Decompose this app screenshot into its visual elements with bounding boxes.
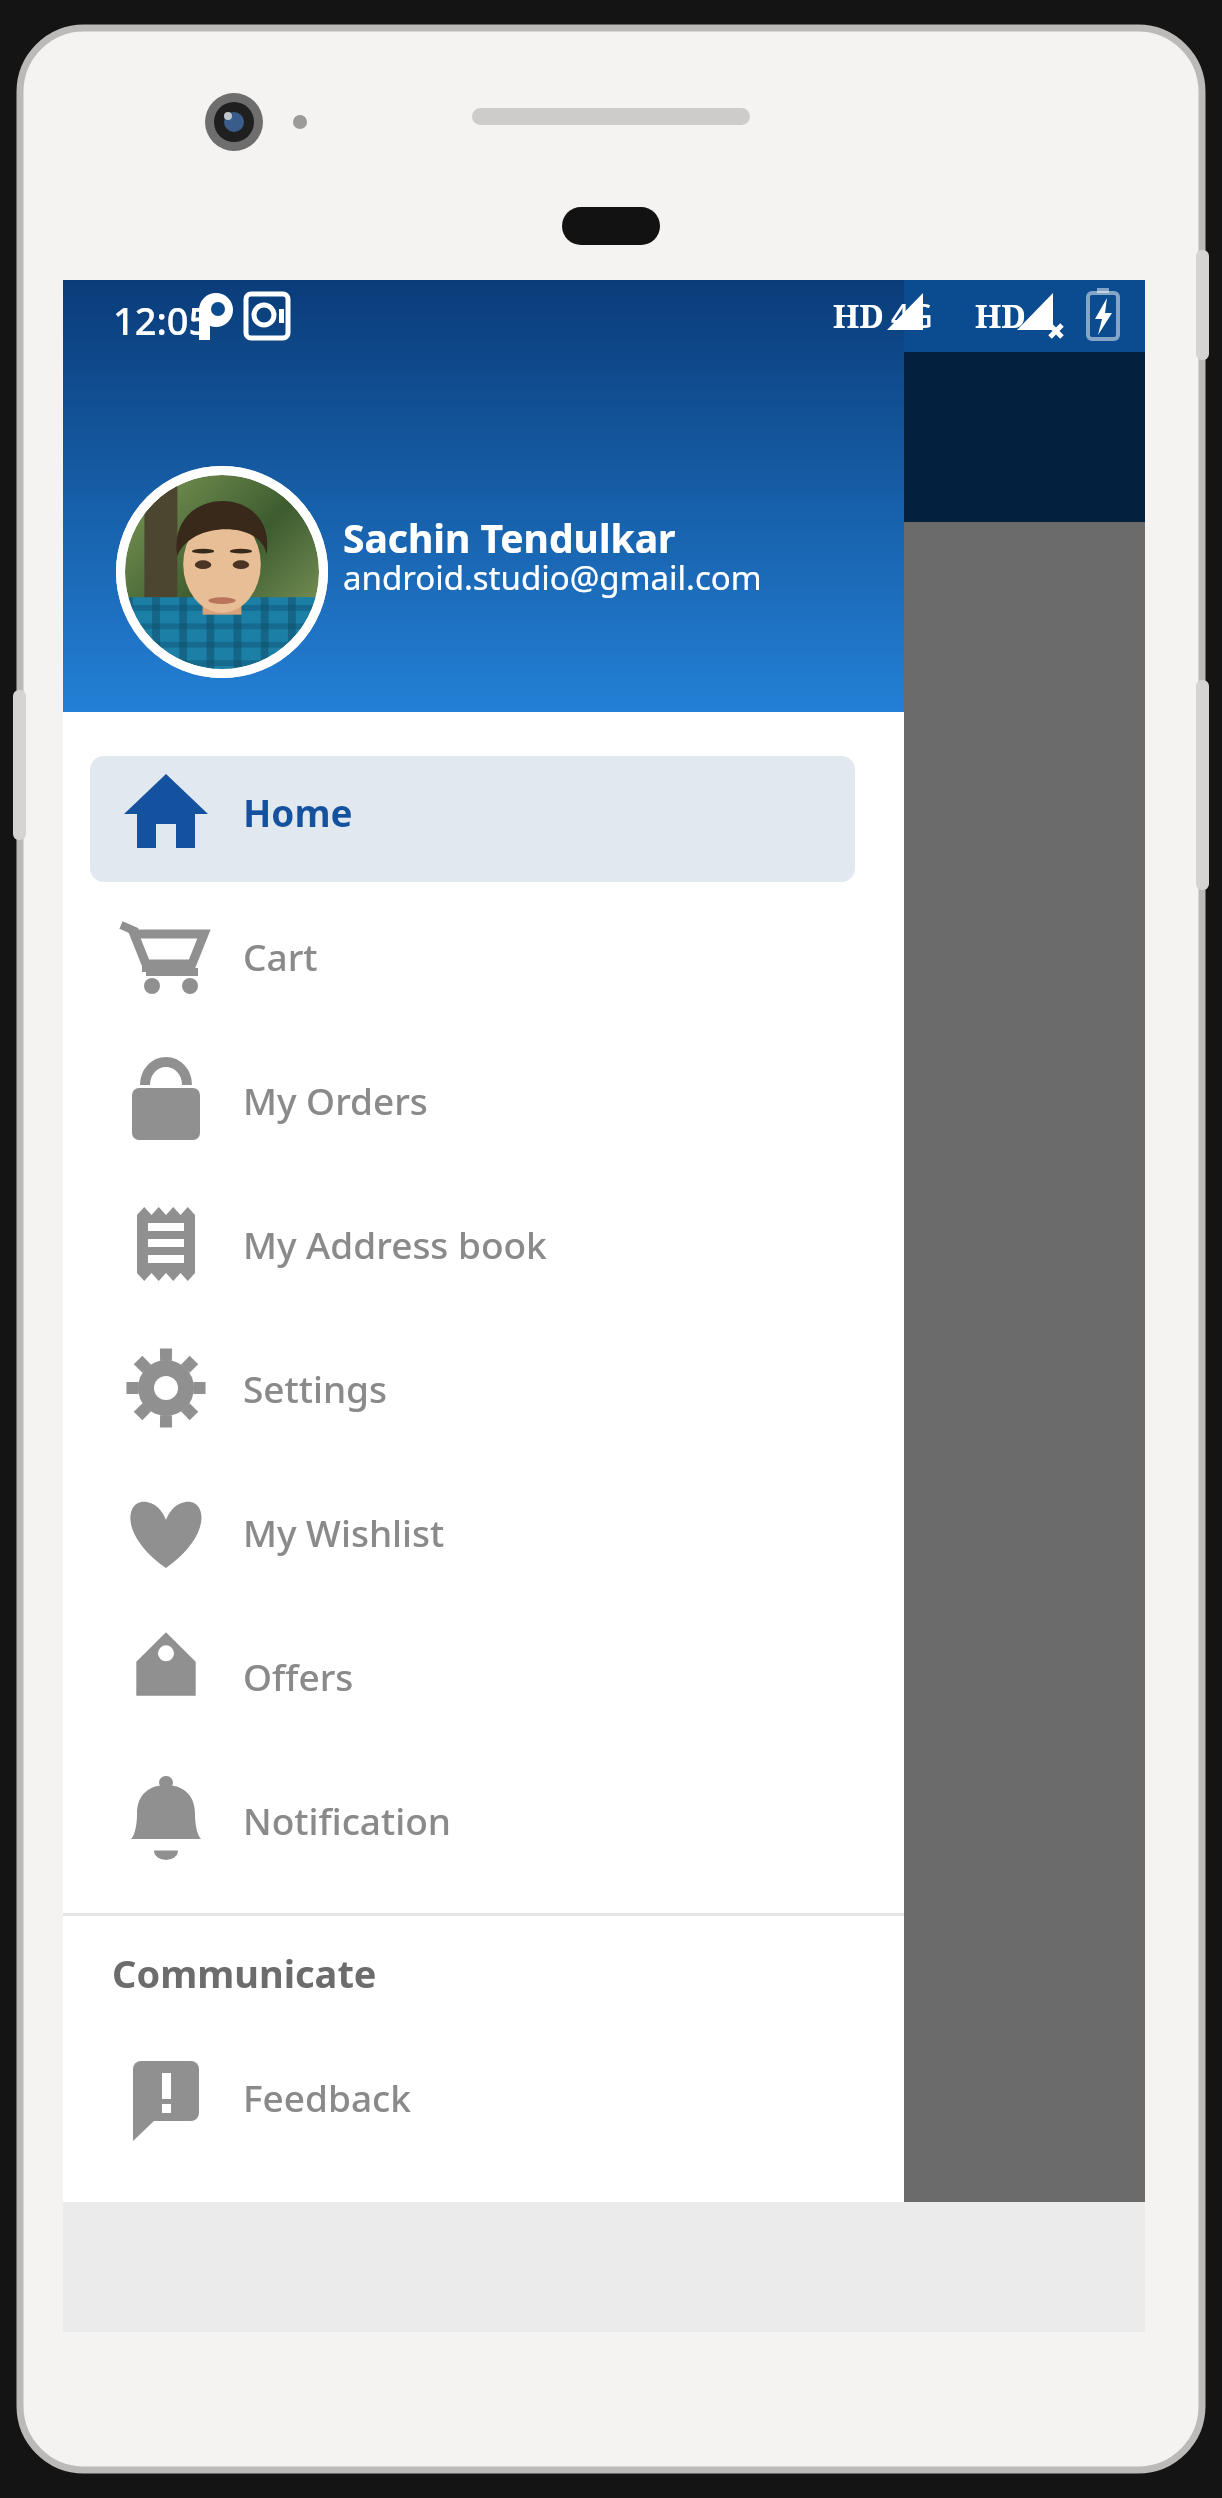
button[interactable]: My Orders [63, 1037, 904, 1163]
button[interactable]: Cart [63, 893, 904, 1019]
staticText: Notification [243, 1795, 451, 1845]
staticText: Communicate [112, 1947, 377, 1999]
staticText: android.studio@gmail.com [343, 555, 762, 600]
button[interactable]: Notification [63, 1757, 904, 1883]
staticText: Feedback [243, 2072, 411, 2122]
button[interactable]: Settings [63, 1325, 904, 1451]
staticText: My Orders [243, 1075, 428, 1125]
staticText: HD [975, 294, 1026, 338]
staticText: Sachin Tendulkar [343, 511, 676, 564]
button[interactable]: My Address book [63, 1181, 904, 1307]
button[interactable]: My Wishlist [63, 1469, 904, 1595]
staticText: Home [243, 787, 353, 837]
staticText: My Wishlist [243, 1507, 445, 1557]
button[interactable]: Home [63, 749, 904, 875]
button[interactable]: Offers [63, 1613, 904, 1739]
staticText: HD [833, 294, 884, 338]
staticText: My Address book [243, 1219, 547, 1269]
staticText: Cart [243, 931, 318, 981]
staticText: Offers [243, 1651, 354, 1701]
button[interactable] [63, 280, 904, 712]
staticText: 12:05 [113, 294, 211, 346]
staticText: 4G [891, 294, 933, 338]
button[interactable]: Feedback [63, 2034, 904, 2160]
staticText: Settings [243, 1363, 388, 1413]
